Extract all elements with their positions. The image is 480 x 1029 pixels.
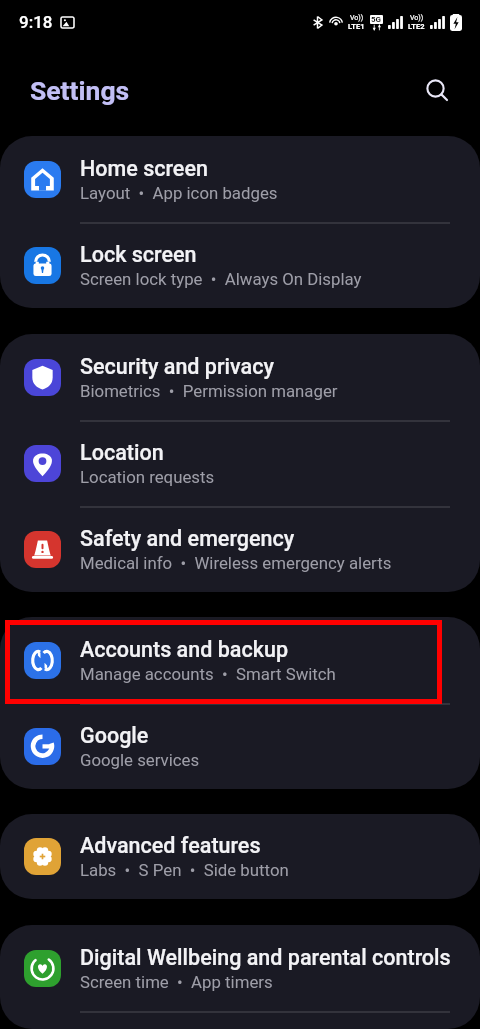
staticText: Advanced features (80, 833, 261, 858)
staticText: Medical info • Wireless emergency alerts (80, 553, 392, 573)
staticText: Biometrics • Permission manager (80, 381, 338, 401)
staticText: Screen time • App timers (80, 972, 273, 992)
button[interactable]: Location (0, 420, 480, 506)
staticText: Home screen (80, 156, 208, 181)
button[interactable]: Digital Wellbeing and parental controls (0, 925, 480, 1011)
staticText: Labs • S Pen • Side button (80, 860, 289, 880)
staticText: Layout • App icon badges (80, 183, 278, 203)
button[interactable]: Advanced features (0, 814, 480, 899)
staticText: Accounts and backup (80, 637, 288, 662)
staticText: Settings (30, 75, 130, 106)
button[interactable]: Search (415, 68, 459, 112)
staticText: Google services (80, 750, 200, 770)
button[interactable]: Accounts and backup (0, 617, 480, 703)
staticText: Manage accounts • Smart Switch (80, 664, 336, 684)
staticText: Digital Wellbeing and parental controls (80, 945, 451, 970)
staticText: Google (80, 723, 149, 748)
button[interactable]: Security and privacy (0, 334, 480, 420)
staticText: Vo)) (410, 14, 424, 22)
button[interactable]: Safety and emergency (0, 506, 480, 592)
staticText: Location requests (80, 467, 215, 487)
staticText: LTE1 (348, 22, 365, 31)
button[interactable]: Lock screen (0, 222, 480, 308)
staticText: 5G (371, 15, 382, 24)
staticText: Screen lock type • Always On Display (80, 269, 362, 289)
staticText: Lock screen (80, 242, 197, 267)
staticText: Security and privacy (80, 354, 274, 379)
staticText: Vo)) (350, 14, 364, 22)
button[interactable]: Google (0, 703, 480, 789)
staticText: 9:18 (19, 12, 53, 32)
staticText: LTE2 (408, 22, 425, 31)
staticText: Safety and emergency (80, 526, 295, 551)
button[interactable]: Home screen (0, 136, 480, 222)
staticText: Location (80, 440, 164, 465)
